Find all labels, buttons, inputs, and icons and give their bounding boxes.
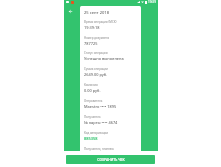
staticText: СОХРАНИТЬ ЧЕК (97, 157, 125, 162)
staticText: Код авторизации (84, 131, 109, 135)
staticText: Время операции (МСК) (84, 20, 117, 24)
button[interactable]: Back (64, 5, 76, 17)
staticText: 2649.00 руб. (84, 72, 108, 77)
staticText: 19:39:18 (84, 25, 100, 30)
staticText: Отправитель (84, 99, 103, 103)
staticText: 787725 (84, 41, 98, 46)
staticText: Комиссия (84, 83, 98, 87)
staticText: № карты •••• 4674 (84, 120, 118, 125)
staticText: 25 сент 2018 (84, 10, 110, 16)
staticText: Успешно выполнена (84, 56, 124, 61)
staticText: Сумма операции (84, 67, 108, 71)
staticText: Maestro •••• 1895 (84, 104, 117, 109)
staticText: 0.00 руб. (84, 88, 101, 93)
staticText: 19:39 (148, 0, 156, 4)
staticText: Получатель (84, 115, 101, 119)
staticText: Статус операции (84, 51, 108, 55)
staticText: Номер документа (84, 36, 110, 40)
staticText: 885358 (84, 136, 98, 141)
staticText: Получатель, платежа (84, 147, 114, 151)
button[interactable]: СОХРАНИТЬ ЧЕК (66, 155, 155, 164)
